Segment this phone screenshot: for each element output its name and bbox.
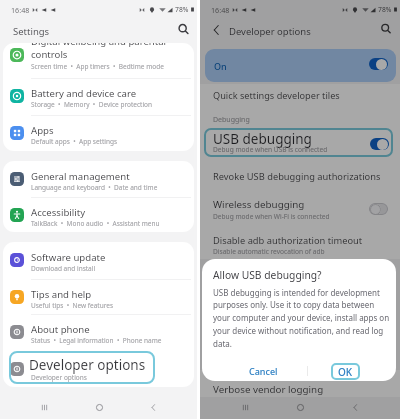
staticText: Storage • Memory • Device protection [31, 100, 153, 109]
staticText: Disable adb authorization timeout [213, 234, 363, 247]
staticText: Debugging [213, 115, 250, 125]
staticText: controls [31, 48, 68, 61]
button[interactable]: OK [331, 363, 360, 380]
staticText: General management [31, 170, 130, 183]
button[interactable]: Developer options [3, 351, 194, 387]
button[interactable]: Tips and help [3, 279, 194, 315]
staticText: Disable automatic revocation of adb [213, 247, 325, 256]
button[interactable]: Apps [3, 115, 194, 151]
staticText: OK [338, 365, 353, 379]
button[interactable]: Cancel [245, 363, 281, 379]
staticText: Developer options [229, 25, 311, 38]
button[interactable]: Recent apps [235, 397, 255, 417]
button[interactable]: Accessibility [3, 197, 194, 232]
staticText: Screen time • App timers • Bedtime mode [31, 62, 164, 71]
staticText: On [214, 60, 227, 72]
button[interactable]: Disable adb authorization timeout [200, 230, 400, 259]
staticText: Default apps • App settings [31, 137, 118, 146]
staticText: 78% [378, 5, 392, 14]
button[interactable]: Search [378, 21, 394, 37]
staticText: Digital wellbeing and parental [31, 43, 167, 48]
staticText: Download and install [31, 264, 96, 273]
staticText: Settings [13, 25, 50, 38]
button[interactable]: General management [3, 161, 194, 197]
staticText: Verbose vendor logging [213, 383, 324, 396]
staticText: Language and keyboard • Date and time [31, 183, 158, 192]
button[interactable]: Wireless debugging [200, 192, 400, 225]
staticText: Software update [31, 251, 106, 264]
staticText: Developer options [31, 373, 87, 382]
staticText: About phone [31, 323, 90, 336]
button[interactable]: Home [290, 397, 310, 417]
staticText: TalkBack • Mono audio • Assistant menu [31, 219, 160, 228]
staticText: Battery and device care [31, 87, 137, 100]
staticText: Debug mode when Wi-Fi is connected [213, 212, 330, 221]
button[interactable]: About phone [3, 314, 194, 350]
button[interactable]: Back [345, 397, 365, 417]
staticText: Debug mode when USB is connected [213, 145, 328, 154]
button[interactable]: Home [89, 397, 109, 417]
button[interactable]: Recent apps [34, 397, 54, 417]
staticText: Wireless debugging [213, 198, 305, 211]
staticText: Apps [31, 124, 54, 137]
button[interactable]: Software update [3, 242, 194, 278]
button[interactable]: Battery and device care [3, 78, 194, 114]
staticText: 16:48 [11, 5, 30, 15]
staticText: Status • Legal information • Phone name [31, 336, 162, 345]
button[interactable]: Navigate up [209, 22, 225, 38]
button[interactable]: Search [175, 21, 192, 38]
button[interactable]: Revoke USB debugging authorizations [200, 159, 400, 190]
staticText: 16:48 [211, 5, 230, 15]
staticText: USB debugging is intended for developmen… [213, 287, 391, 349]
staticText: Tips and help [31, 288, 92, 301]
staticText: Useful tips • New features [31, 301, 114, 310]
staticText: USB debugging [213, 130, 312, 148]
button[interactable]: On [205, 49, 396, 82]
staticText: Allow USB debugging? [213, 268, 322, 282]
button[interactable]: Digital wellbeing and parental [3, 43, 194, 78]
button[interactable]: Back [143, 397, 163, 417]
staticText: 78% [175, 5, 189, 14]
staticText: Developer options [29, 356, 146, 374]
staticText: Cancel [249, 365, 278, 377]
button[interactable]: USB debugging [200, 128, 400, 157]
button[interactable] [200, 84, 400, 108]
staticText: Accessibility [31, 206, 86, 219]
staticText: Revoke USB debugging authorizations [213, 170, 381, 183]
staticText: Quick settings developer tiles [213, 89, 340, 102]
